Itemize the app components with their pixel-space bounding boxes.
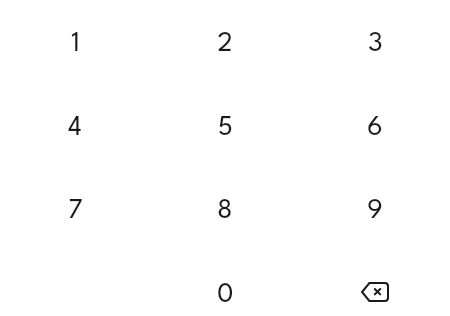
button[interactable]: 9 xyxy=(300,169,450,253)
staticText: 8 xyxy=(217,198,233,224)
button[interactable]: 7 xyxy=(0,169,150,253)
button[interactable]: 8 xyxy=(150,169,300,253)
staticText: 9 xyxy=(367,198,383,224)
staticText: 2 xyxy=(217,31,233,57)
button[interactable]: Backspace xyxy=(300,253,450,316)
staticText: 7 xyxy=(68,198,83,224)
button[interactable]: 0 xyxy=(150,253,300,316)
button[interactable]: 5 xyxy=(150,86,300,170)
button[interactable]: 6 xyxy=(300,86,450,170)
staticText: 0 xyxy=(217,282,234,308)
button[interactable]: 2 xyxy=(150,2,300,86)
button[interactable]: 4 xyxy=(0,86,150,170)
button[interactable]: 1 xyxy=(0,2,150,86)
staticText: 6 xyxy=(367,115,383,141)
staticText: 4 xyxy=(68,115,82,141)
button[interactable]: 3 xyxy=(300,2,450,86)
staticText: 1 xyxy=(71,31,80,57)
staticText: 5 xyxy=(218,115,233,141)
staticText: 3 xyxy=(368,31,383,57)
